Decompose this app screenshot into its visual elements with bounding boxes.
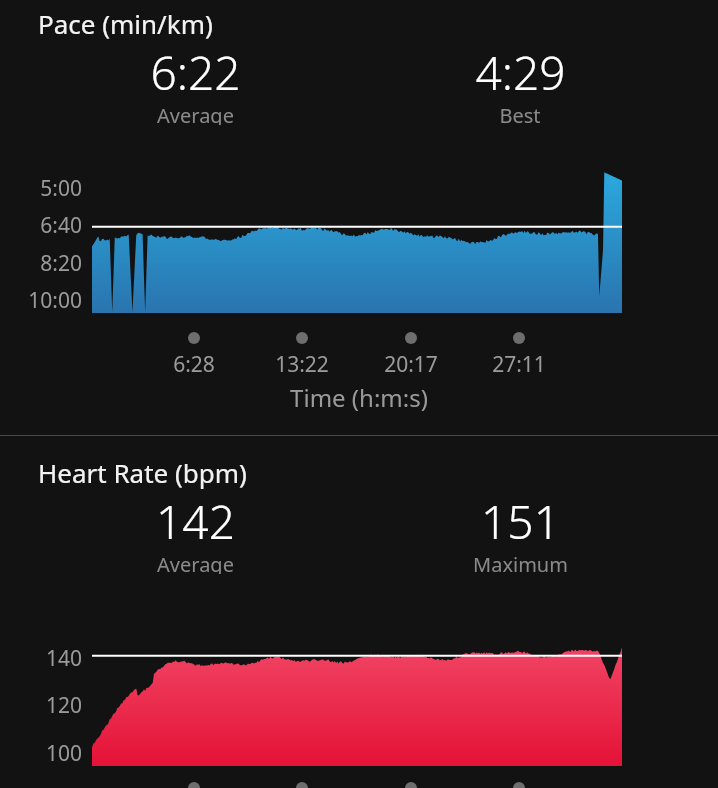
button[interactable]: 6:22 (115, 41, 275, 127)
button[interactable]: 142 (115, 490, 275, 576)
staticText: 151 (481, 490, 560, 553)
button[interactable]: 151 (440, 490, 600, 576)
staticText: 6:22 (150, 41, 241, 104)
staticText: Average (157, 551, 234, 574)
staticText: 8:20 (0, 249, 82, 278)
staticText: 5:00 (0, 174, 82, 203)
staticText: Time (h:m:s) (0, 381, 718, 414)
staticText: Best (499, 102, 541, 125)
staticText: 100 (0, 739, 82, 768)
staticText: 10:00 (0, 286, 82, 315)
staticText: Pace (min/km) (38, 6, 213, 41)
staticText: 140 (0, 644, 82, 673)
staticText: 6:28 (134, 350, 254, 379)
staticText: 13:22 (242, 350, 362, 379)
staticText: 6:40 (0, 211, 82, 240)
staticText: Maximum (473, 551, 568, 574)
staticText: 4:29 (475, 41, 566, 104)
button[interactable]: Heart rate chart (92, 618, 622, 766)
staticText: Average (157, 102, 234, 125)
staticText: Heart Rate (bpm) (38, 455, 247, 490)
staticText: 27:11 (459, 350, 579, 379)
staticText: 20:17 (351, 350, 471, 379)
staticText: 142 (156, 490, 235, 553)
button[interactable]: Pace chart (92, 168, 622, 313)
button[interactable]: 4:29 (440, 41, 600, 127)
staticText: 120 (0, 691, 82, 720)
